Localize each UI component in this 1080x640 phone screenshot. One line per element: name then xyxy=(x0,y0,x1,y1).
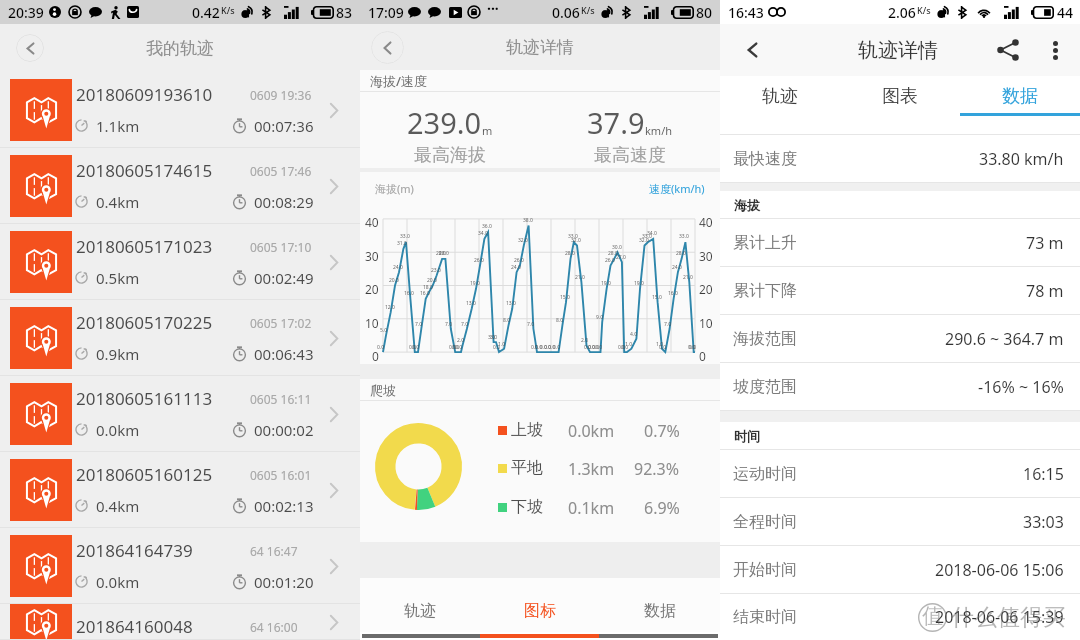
staticText: 00:06:43 xyxy=(254,344,314,364)
staticText: 爬坡 xyxy=(370,382,396,398)
staticText: 轨迹 xyxy=(762,85,798,108)
staticText: 0605 16:01 xyxy=(250,467,312,483)
staticText: 80 xyxy=(696,3,713,22)
button[interactable]: 海拔范围 xyxy=(733,315,1064,362)
staticText: 83 xyxy=(336,3,353,22)
button[interactable]: 20180605160125 xyxy=(0,452,360,528)
staticText: 7.0 xyxy=(445,321,453,328)
staticText: 00:07:36 xyxy=(254,116,314,136)
staticText: 0.4km xyxy=(96,496,140,516)
staticText: 海拔(m) xyxy=(375,181,414,196)
staticText: 16.0 xyxy=(404,290,414,297)
staticText: 64 16:47 xyxy=(250,543,298,559)
staticText: 26.0 xyxy=(605,257,615,264)
staticText: 20.0 xyxy=(389,277,399,284)
button[interactable]: 20180605174615 xyxy=(0,148,360,224)
button[interactable]: 累计上升 xyxy=(733,219,1064,266)
staticText: 0.0 xyxy=(535,344,543,351)
button[interactable]: Back xyxy=(16,34,44,62)
staticText: 5.0 xyxy=(380,327,388,334)
staticText: 32.0 xyxy=(639,237,649,244)
staticText: 239.0 xyxy=(407,103,482,142)
staticText: 78 m xyxy=(1026,280,1064,302)
staticText: 19.0 xyxy=(470,280,480,287)
staticText: -16% ~ 16% xyxy=(978,376,1064,398)
staticText: 0.0 xyxy=(548,344,556,351)
staticText: 20180605174615 xyxy=(76,159,213,182)
button[interactable]: 累计下降 xyxy=(733,267,1064,314)
staticText: 16:43 xyxy=(728,3,764,22)
staticText: 2.0 xyxy=(457,337,465,344)
staticText: 40 xyxy=(699,214,713,230)
staticText: 20 xyxy=(699,281,713,297)
staticText: 7.0 xyxy=(527,321,535,328)
button[interactable]: 坡度范围 xyxy=(733,363,1064,410)
staticText: 1.1km xyxy=(96,116,140,136)
staticText: 0.0 xyxy=(618,344,626,351)
button[interactable]: 20180605171023 xyxy=(0,224,360,300)
button[interactable]: 201864160048 xyxy=(0,604,360,640)
staticText: 轨迹详情 xyxy=(858,38,938,63)
button[interactable]: 数据 xyxy=(600,578,720,632)
button[interactable]: 最快速度 xyxy=(733,135,1064,182)
button[interactable]: 开始时间 xyxy=(733,546,1064,593)
staticText: 20180605171023 xyxy=(76,235,213,258)
staticText: 38.0 xyxy=(523,217,533,224)
button[interactable]: Back xyxy=(736,34,768,66)
button[interactable]: 全程时间 xyxy=(733,498,1064,545)
button[interactable]: Back xyxy=(371,31,404,64)
staticText: 64 16:00 xyxy=(250,619,298,635)
staticText: 73 m xyxy=(1026,232,1064,254)
button[interactable]: More options xyxy=(1040,35,1070,65)
staticText: 33.0 xyxy=(400,233,410,240)
staticText: 20180605170225 xyxy=(76,311,213,334)
staticText: 0.0km xyxy=(568,420,615,440)
staticText: 30.0 xyxy=(612,244,622,251)
button[interactable]: 20180605170225 xyxy=(0,300,360,376)
button[interactable]: 结束时间 xyxy=(733,594,1064,640)
staticText: 0.0 xyxy=(553,344,561,351)
staticText: 最快速度 xyxy=(733,149,797,169)
staticText: 0.0 xyxy=(531,344,539,351)
staticText: 17:09 xyxy=(368,3,404,22)
staticText: 33:03 xyxy=(1023,511,1064,533)
staticText: 1.3km xyxy=(568,458,615,478)
staticText: 0.0 xyxy=(455,344,463,351)
staticText: 32.0 xyxy=(571,237,581,244)
staticText: 平地 xyxy=(511,458,543,478)
staticText: 24.0 xyxy=(511,264,521,271)
staticText: 运动时间 xyxy=(733,464,797,484)
staticText: 0605 17:02 xyxy=(250,315,312,331)
button[interactable]: 20180605161113 xyxy=(0,376,360,452)
button[interactable]: 轨迹 xyxy=(720,76,840,116)
staticText: 16.0 xyxy=(420,290,430,297)
staticText: 4.0 xyxy=(630,331,638,338)
staticText: 12.0 xyxy=(385,304,395,311)
button[interactable]: 图标 xyxy=(480,578,600,632)
staticText: 0.0 xyxy=(588,344,596,351)
button[interactable]: 轨迹 xyxy=(360,578,480,632)
button[interactable]: Share xyxy=(991,33,1025,67)
staticText: 9.0 xyxy=(596,314,604,321)
button[interactable]: 运动时间 xyxy=(733,450,1064,497)
staticText: 30 xyxy=(365,248,379,264)
staticText: 0.0 xyxy=(584,344,592,351)
staticText: 速度(km/h) xyxy=(649,181,705,196)
staticText: 时间 xyxy=(734,428,760,444)
staticText: 24.0 xyxy=(672,264,682,271)
staticText: 0 xyxy=(372,348,379,364)
staticText: 轨迹 xyxy=(404,601,436,621)
button[interactable]: 图表 xyxy=(840,76,960,116)
staticText: 8.0 xyxy=(503,317,511,324)
button[interactable]: 数据 xyxy=(960,76,1080,116)
button[interactable]: 201864164739 xyxy=(0,528,360,604)
staticText: 7.0 xyxy=(415,321,423,328)
staticText: km/h xyxy=(645,123,673,138)
staticText: 6.9% xyxy=(644,497,680,517)
staticText: 92.3% xyxy=(634,458,680,478)
staticText: 28.0 xyxy=(608,250,618,257)
staticText: 28.0 xyxy=(439,250,449,257)
staticText: 0.0 xyxy=(493,344,501,351)
button[interactable]: 20180609193610 xyxy=(0,72,360,148)
staticText: 10 xyxy=(699,315,713,331)
